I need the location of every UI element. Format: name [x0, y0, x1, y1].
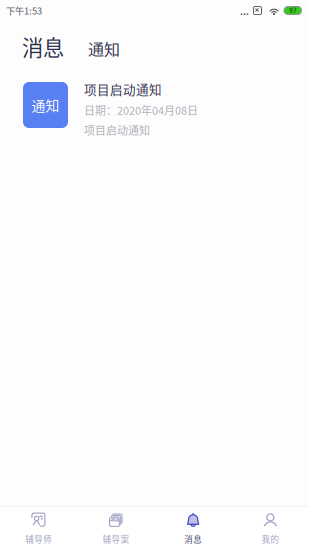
staticText: 项目启动通知	[84, 80, 162, 98]
staticText: 辅导师	[25, 533, 52, 545]
button[interactable]: 辅导案	[77, 505, 154, 550]
staticText: 辅导案	[102, 533, 129, 545]
button[interactable]: 通知	[0, 62, 309, 138]
staticText: 97	[289, 7, 296, 14]
button[interactable]: 辅导师	[0, 505, 77, 550]
staticText: 消息	[22, 31, 64, 62]
button[interactable]: 消息	[22, 31, 64, 62]
staticText: 我的	[261, 533, 279, 545]
staticText: 项目启动通知	[84, 122, 150, 138]
staticText: 通知	[88, 37, 120, 60]
staticText: 通知	[31, 95, 59, 115]
staticText: 消息	[184, 533, 202, 545]
button[interactable]: 消息	[154, 505, 232, 550]
button[interactable]: 我的	[232, 505, 309, 550]
button[interactable]: 通知	[88, 37, 120, 62]
staticText: 日期：2020年04月08日	[84, 102, 198, 118]
staticText: 下午1:53	[6, 4, 42, 17]
